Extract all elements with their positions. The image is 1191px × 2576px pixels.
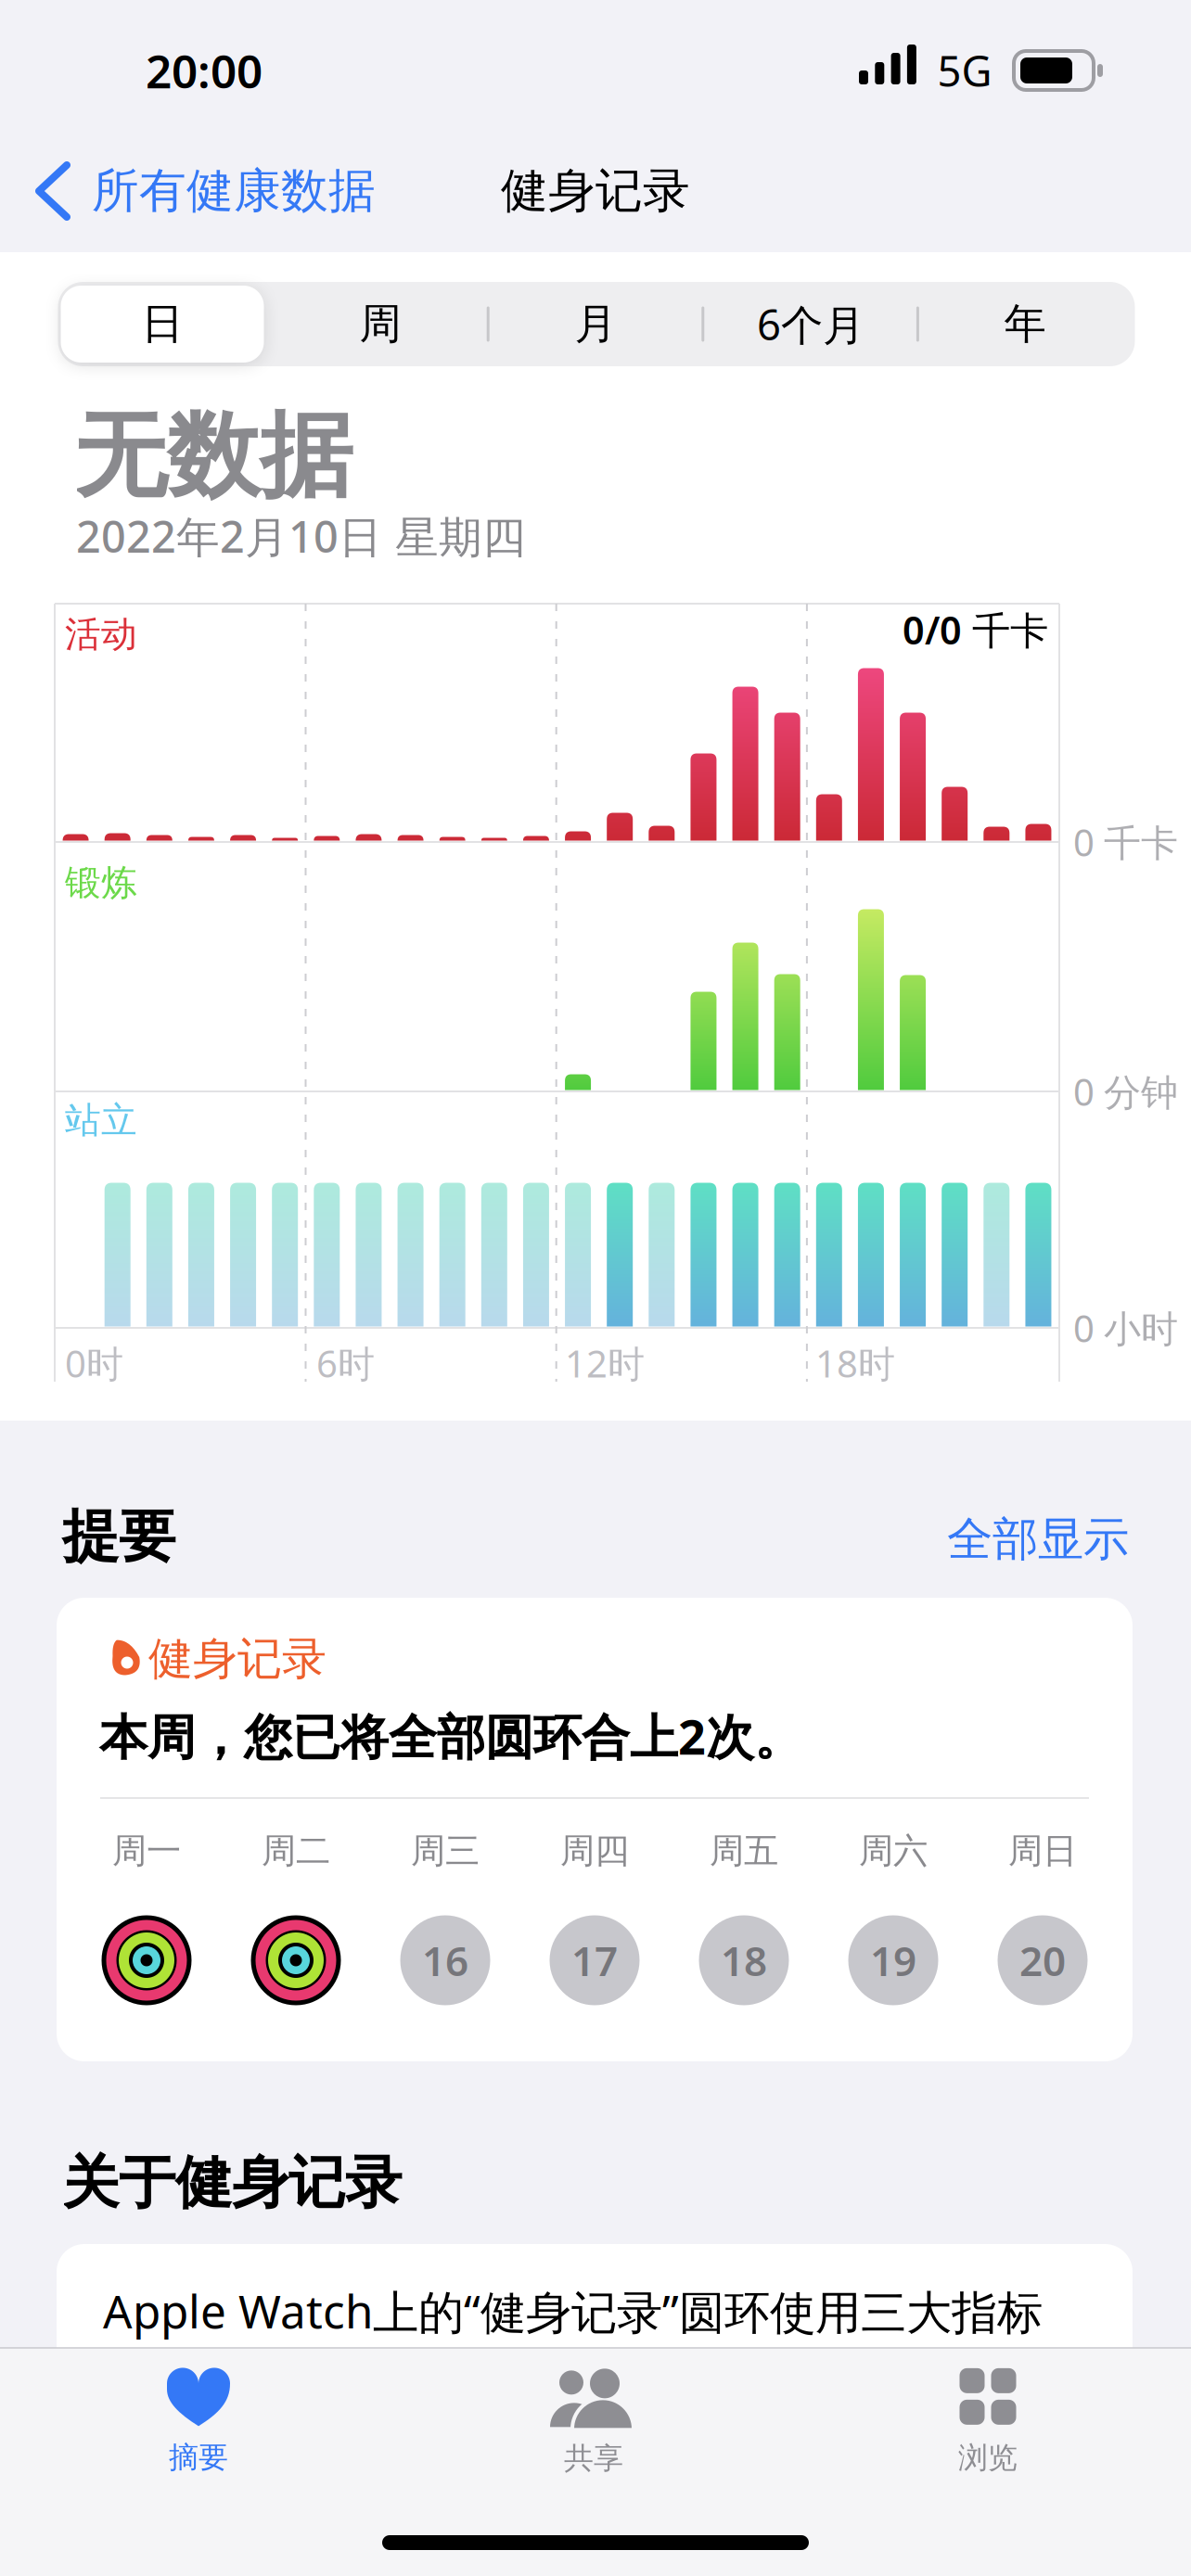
staticText: 2022年2月10日 星期四 (76, 507, 526, 565)
staticText: 日 (141, 298, 183, 350)
staticText: 月 (575, 298, 616, 350)
staticText: 20:00 (146, 40, 263, 101)
staticText: 锻炼 (65, 861, 137, 905)
button[interactable]: 日 (58, 283, 267, 365)
staticText: 活动 (65, 612, 137, 656)
staticText: 6个月 (757, 296, 864, 352)
staticText: 周日 (1008, 1830, 1077, 1872)
staticText: 提要 (62, 1502, 175, 1571)
staticText: 0时 (65, 1338, 123, 1388)
staticText: 周四 (560, 1830, 629, 1872)
button[interactable]: 共享 (473, 2362, 714, 2482)
staticText: 17 (571, 1933, 618, 1987)
staticText: 年 (1004, 298, 1046, 350)
staticText: 20 (1019, 1933, 1066, 1987)
staticText: 18时 (815, 1338, 895, 1388)
staticText: 0 分钟 (1073, 1067, 1178, 1116)
staticText: 16 (422, 1933, 468, 1987)
staticText: 周六 (859, 1830, 928, 1872)
staticText: 12时 (565, 1338, 645, 1388)
staticText: 浏览 (958, 2440, 1018, 2476)
staticText: 无数据 (74, 399, 352, 513)
staticText: 0/0 千卡 (903, 604, 1048, 655)
staticText: 周三 (411, 1830, 480, 1872)
staticText: 周二 (262, 1830, 330, 1872)
staticText: 健身记录 (148, 1632, 327, 1686)
button[interactable]: 健身记录 (57, 1598, 1133, 2061)
staticText: 摘要 (169, 2439, 228, 2475)
staticText: 全部显示 (947, 1511, 1129, 1567)
staticText: 健身记录 (501, 162, 690, 220)
staticText: 18 (721, 1933, 767, 1987)
staticText: 5G (937, 43, 992, 98)
staticText: 所有健康数据 (92, 162, 376, 220)
staticText: 周五 (710, 1830, 778, 1872)
staticText: 0 千卡 (1073, 817, 1178, 867)
staticText: 共享 (564, 2440, 623, 2476)
staticText: 站立 (65, 1098, 137, 1142)
staticText: 6时 (316, 1338, 375, 1388)
staticText: 周 (359, 298, 401, 350)
button[interactable]: 年 (921, 283, 1129, 365)
staticText: Apple Watch上的“健身记录”圆环使用三大指标 (103, 2280, 1043, 2341)
button[interactable]: 浏览 (867, 2362, 1108, 2482)
button[interactable]: 全部显示 (947, 1511, 1129, 1567)
button[interactable]: 月 (491, 283, 700, 365)
button[interactable]: 周 (276, 283, 485, 365)
staticText: 19 (870, 1933, 916, 1987)
staticText: 周一 (112, 1830, 181, 1872)
staticText: 本周，您已将全部圆环合上2次。 (99, 1704, 802, 1768)
staticText: 关于健身记录 (62, 2148, 402, 2218)
staticText: 0 小时 (1073, 1303, 1178, 1352)
button[interactable]: 摘要 (78, 2362, 319, 2482)
button[interactable]: 所有健康数据 (39, 162, 376, 220)
button[interactable]: 6个月 (706, 283, 915, 365)
